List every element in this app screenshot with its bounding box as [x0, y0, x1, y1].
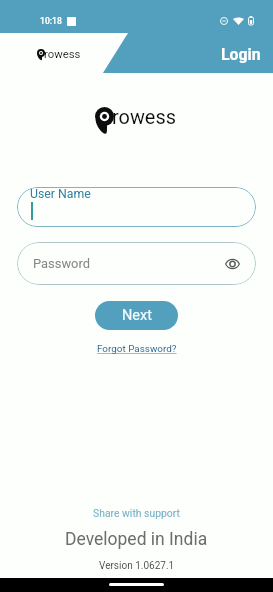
button[interactable]: Show password	[223, 257, 242, 271]
staticText: Version 1.0627.1	[99, 560, 175, 572]
staticText: Forgot Password?	[97, 343, 177, 355]
staticText: Login	[221, 45, 261, 64]
button[interactable]: Password	[17, 242, 256, 285]
staticText: Next	[122, 307, 152, 324]
staticText: rowess	[44, 48, 81, 61]
button[interactable]: Login	[208, 37, 273, 72]
button[interactable]	[17, 187, 256, 227]
button[interactable]: Forgot Password?	[91, 340, 183, 358]
staticText: Password	[33, 256, 90, 271]
button[interactable]: Next	[95, 301, 178, 330]
staticText: Share with support	[93, 507, 180, 519]
staticText: User Name	[30, 187, 91, 201]
staticText: rowess	[112, 106, 176, 129]
staticText: 10:18	[40, 16, 62, 26]
button[interactable]: Share with support	[85, 504, 188, 522]
staticText: Developed in India	[65, 529, 208, 550]
